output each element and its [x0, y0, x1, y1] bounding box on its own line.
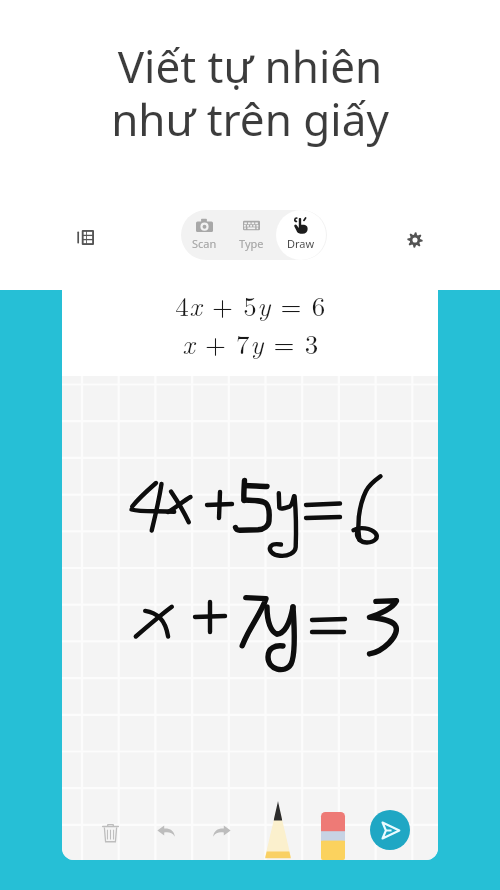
button[interactable]: Draw	[275, 210, 327, 260]
button[interactable]: History	[67, 219, 103, 255]
staticText: 4x + 5y = 6	[175, 286, 326, 324]
staticText: Viết tự nhiên như trên giấy	[0, 36, 500, 148]
button[interactable]: Solve	[370, 810, 410, 850]
staticText: Scan	[192, 236, 217, 251]
staticText: Type	[239, 236, 264, 251]
button[interactable]: Type	[228, 210, 275, 260]
button[interactable]: Pencil	[260, 795, 296, 860]
button[interactable]: Settings	[397, 222, 433, 258]
button[interactable]: Redo	[203, 812, 241, 850]
staticText: Draw	[287, 236, 315, 251]
staticText: x + 7y = 3	[182, 324, 319, 362]
button[interactable]: Undo	[147, 812, 185, 850]
button[interactable]: Scan	[181, 210, 228, 260]
button[interactable]: Clear	[91, 813, 129, 851]
button[interactable]: Eraser	[317, 806, 349, 860]
